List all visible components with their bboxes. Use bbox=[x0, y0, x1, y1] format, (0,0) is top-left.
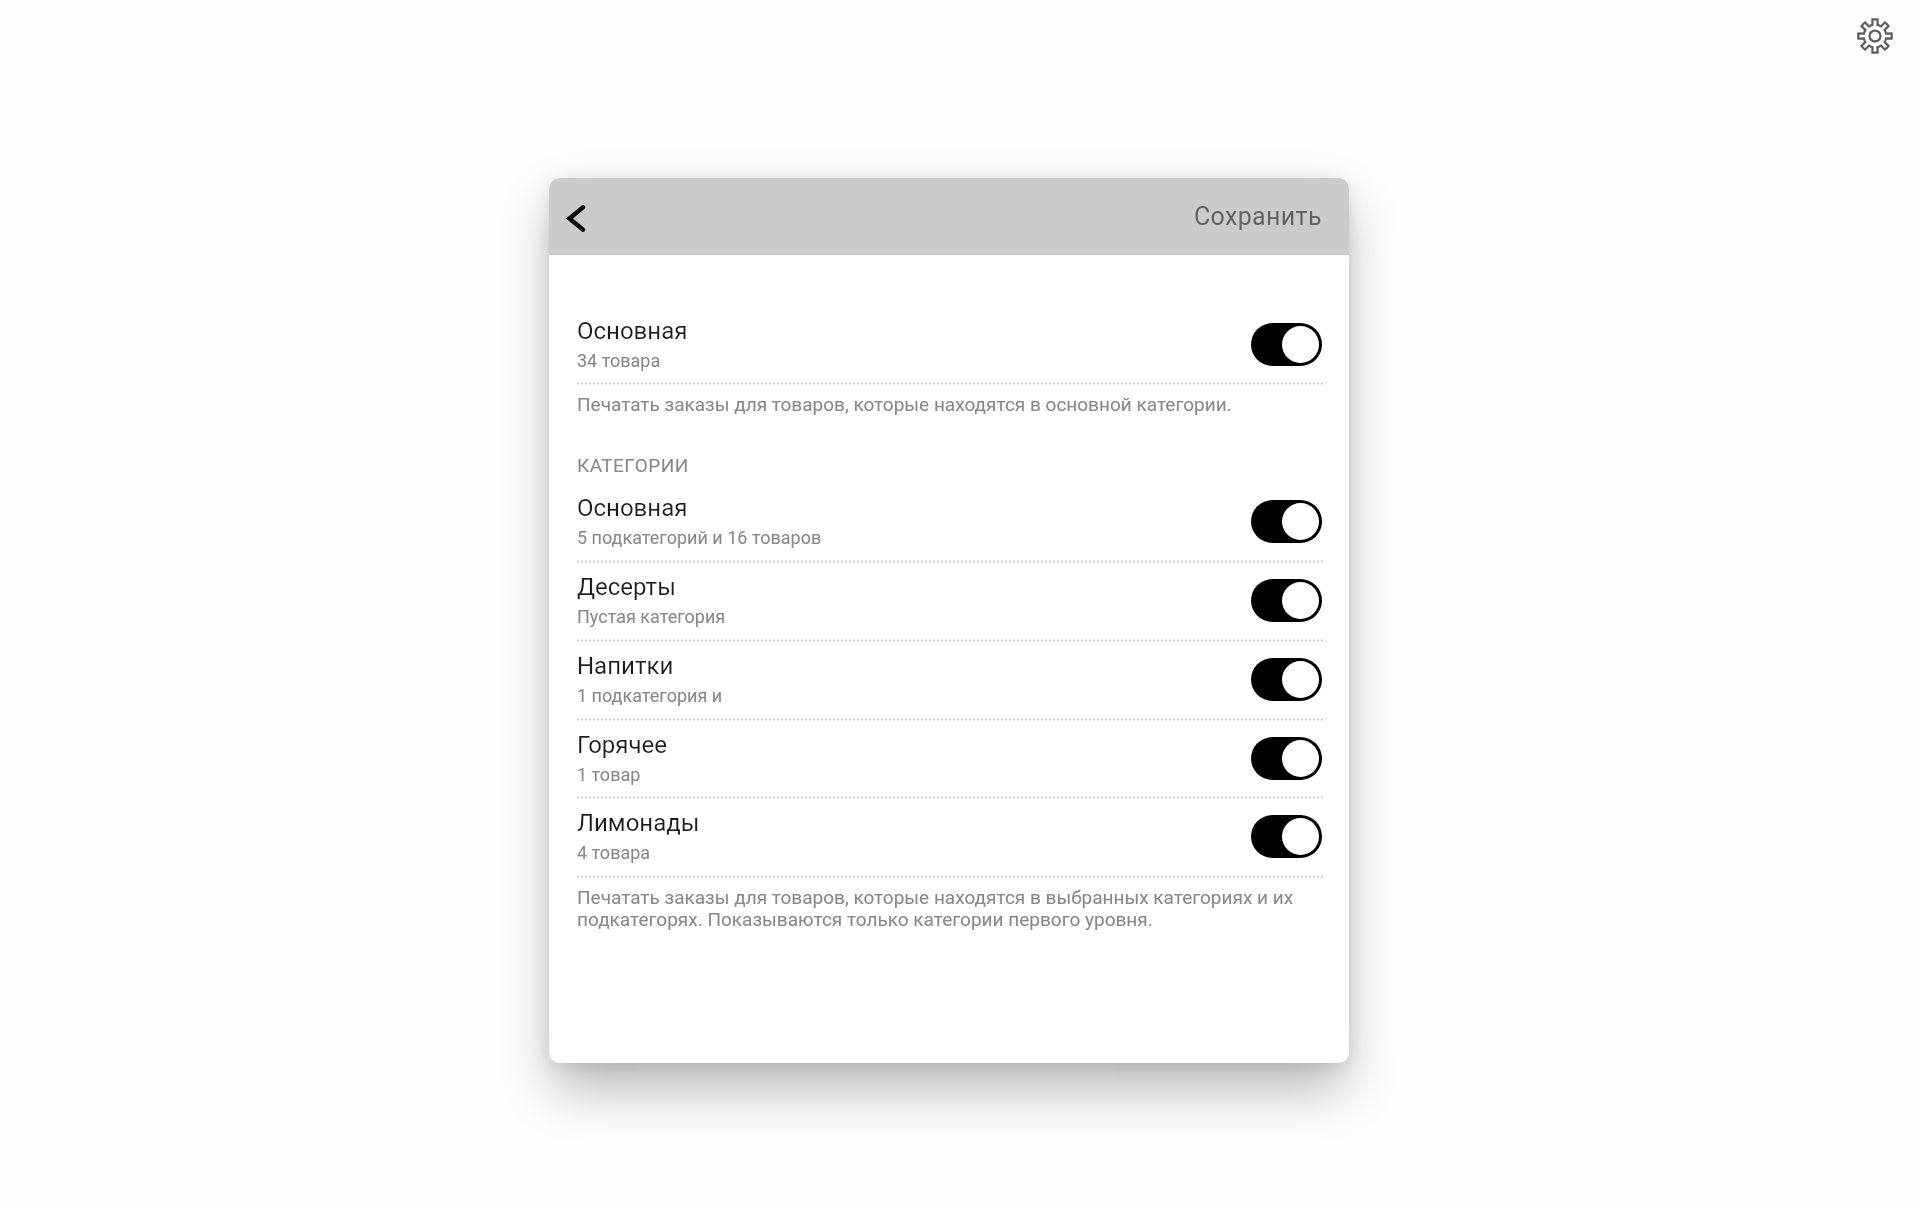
button[interactable]: Toggle bbox=[1251, 323, 1322, 366]
button[interactable]: Горячее bbox=[549, 719, 1349, 798]
staticText: Лимонады bbox=[577, 809, 700, 837]
staticText: 4 товара bbox=[577, 842, 651, 863]
staticText: 5 подкатегорий и 16 товаров bbox=[577, 527, 822, 548]
button[interactable]: Toggle bbox=[1251, 658, 1322, 701]
button[interactable]: Back bbox=[549, 185, 608, 251]
button[interactable]: Toggle bbox=[1251, 815, 1322, 858]
button[interactable]: Toggle bbox=[1251, 500, 1322, 543]
staticText: 1 подкатегория и bbox=[577, 685, 723, 706]
button[interactable]: Десерты bbox=[549, 561, 1349, 640]
staticText: Основная bbox=[577, 494, 688, 522]
button[interactable]: Сохранить bbox=[1194, 202, 1322, 231]
staticText: 34 товара bbox=[577, 350, 661, 371]
staticText: Основная bbox=[577, 317, 688, 345]
staticText: Горячее bbox=[577, 731, 667, 759]
staticText: 1 товар bbox=[577, 764, 641, 785]
staticText: Печатать заказы для товаров, которые нах… bbox=[577, 393, 1321, 415]
button[interactable]: Напитки bbox=[549, 640, 1349, 719]
staticText: КАТЕГОРИИ bbox=[577, 454, 689, 476]
button[interactable]: Toggle bbox=[1251, 737, 1322, 780]
staticText: Десерты bbox=[577, 573, 676, 601]
staticText: Напитки bbox=[577, 652, 674, 680]
staticText: Сохранить bbox=[1194, 202, 1322, 231]
staticText: Печатать заказы для товаров, которые нах… bbox=[577, 886, 1321, 930]
button[interactable]: Toggle bbox=[1251, 579, 1322, 622]
staticText: Пустая категория bbox=[577, 606, 726, 627]
button[interactable]: Settings bbox=[1852, 13, 1898, 59]
button[interactable]: Основная bbox=[549, 305, 1349, 384]
button[interactable]: Лимонады bbox=[549, 797, 1349, 876]
button[interactable]: Основная bbox=[549, 482, 1349, 561]
